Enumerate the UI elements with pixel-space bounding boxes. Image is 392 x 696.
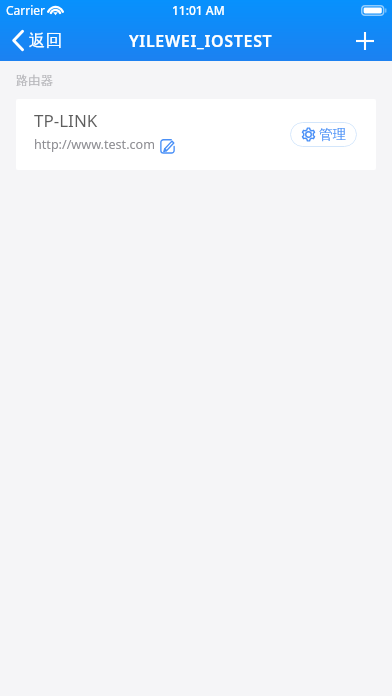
button[interactable]: 管理 (290, 122, 357, 147)
button[interactable]: 返回 (0, 24, 74, 57)
button[interactable]: Add (342, 23, 392, 59)
staticText: YILEWEI_IOSTEST (129, 30, 273, 52)
staticText: Carrier (6, 2, 46, 18)
staticText: TP-LINK (34, 109, 98, 132)
staticText: 路由器 (16, 73, 53, 88)
staticText: http://www.test.com (34, 136, 155, 153)
staticText: 返回 (29, 30, 62, 51)
staticText: 11:01 AM (172, 2, 225, 18)
button[interactable]: Edit (159, 136, 176, 153)
staticText: 管理 (319, 126, 346, 143)
button[interactable]: TP-LINK (16, 99, 376, 170)
